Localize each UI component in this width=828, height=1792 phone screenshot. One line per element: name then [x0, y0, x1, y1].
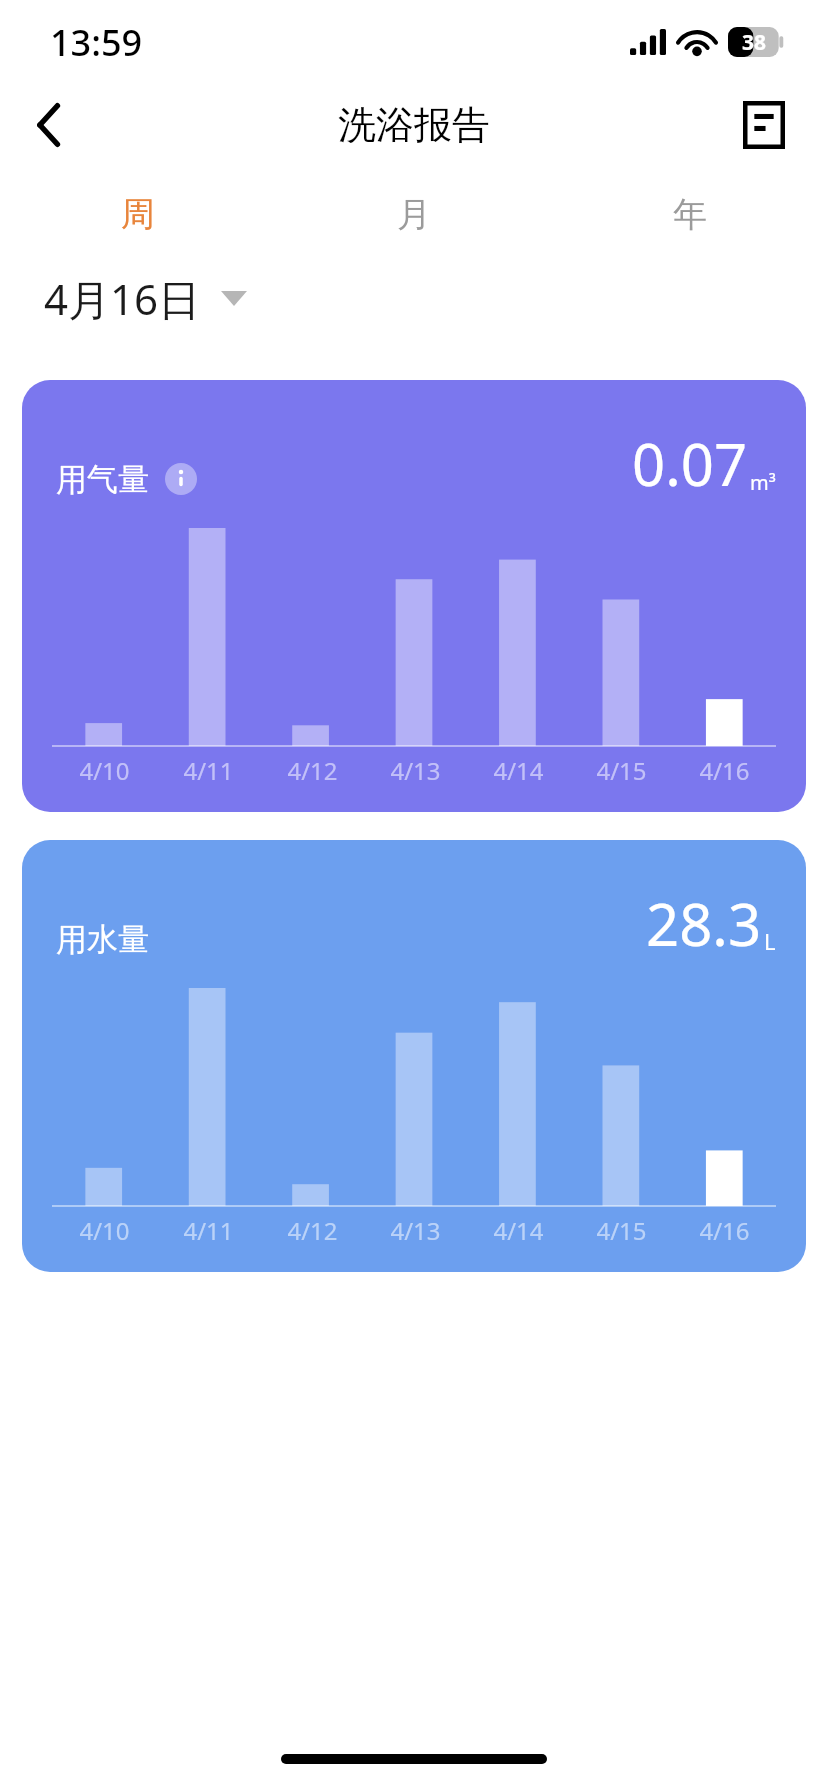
staticText: 4/12 [287, 1214, 338, 1247]
staticText: 4/12 [287, 754, 338, 787]
staticText: 4/14 [493, 754, 544, 787]
button[interactable]: Report list [728, 89, 800, 161]
staticText: 用水量 [56, 920, 149, 959]
button[interactable]: Info [165, 463, 197, 495]
staticText: L [764, 926, 776, 956]
staticText: 4/11 [183, 1214, 234, 1247]
staticText: 4/16 [699, 1214, 750, 1247]
staticText: 年 [673, 193, 707, 236]
staticText: 4月16日 [44, 270, 201, 327]
staticText: 4/16 [699, 754, 750, 787]
staticText: 4/14 [493, 1214, 544, 1247]
staticText: 4/15 [596, 754, 647, 787]
button[interactable]: 月 [276, 166, 552, 262]
staticText: 4/10 [79, 754, 130, 787]
staticText: 4/13 [390, 1214, 441, 1247]
staticText: m³ [750, 469, 776, 496]
button[interactable]: 年 [552, 166, 828, 262]
staticText: 38 [742, 28, 767, 57]
button[interactable]: 周 [0, 166, 276, 262]
button[interactable]: 4月16日 [44, 262, 247, 334]
staticText: 28.3 [646, 884, 762, 963]
staticText: 0.07 [632, 424, 748, 503]
staticText: 4/15 [596, 1214, 647, 1247]
button[interactable]: 用水量 [22, 840, 806, 1272]
staticText: 用气量 [56, 460, 149, 499]
staticText: 月 [397, 193, 431, 236]
button[interactable]: 用气量 [22, 380, 806, 812]
button[interactable]: Back [12, 88, 86, 162]
staticText: 洗浴报告 [338, 101, 490, 149]
staticText: 周 [121, 193, 155, 236]
staticText: 13:59 [50, 18, 143, 67]
staticText: 4/10 [79, 1214, 130, 1247]
staticText: 4/11 [183, 754, 234, 787]
staticText: 4/13 [390, 754, 441, 787]
